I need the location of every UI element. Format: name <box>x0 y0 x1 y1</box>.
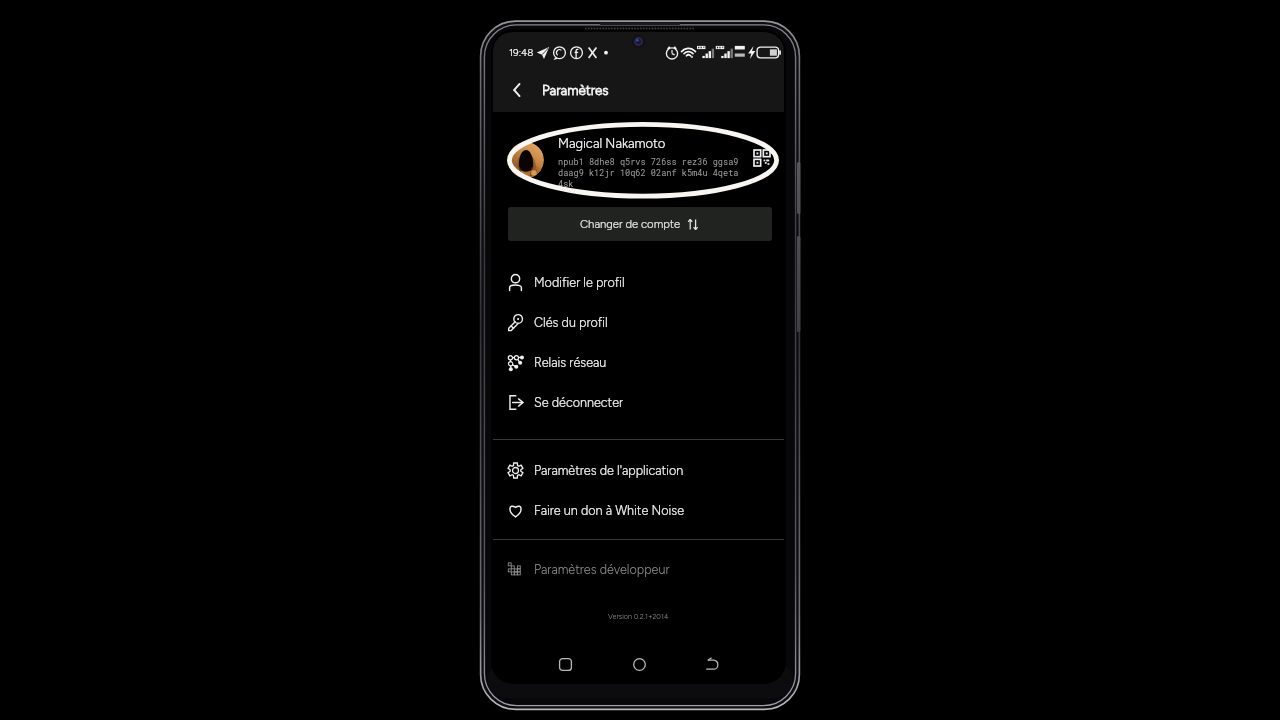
staticText: Faire un don à White Noise <box>534 503 685 518</box>
button[interactable]: Paramètres de l'application <box>493 450 784 490</box>
staticText: Se déconnecter <box>534 395 624 410</box>
staticText: Changer de compte <box>580 217 681 231</box>
button[interactable]: Back <box>696 648 728 680</box>
button[interactable]: Relais réseau <box>493 342 784 382</box>
button[interactable]: Se déconnecter <box>493 382 784 422</box>
staticText: 19:48 <box>509 46 534 58</box>
button[interactable]: Changer de compte <box>508 207 772 241</box>
staticText: Magical Nakamoto <box>558 136 666 152</box>
staticText: Paramètres développeur <box>534 562 670 577</box>
staticText: Relais réseau <box>534 355 607 370</box>
button[interactable]: Back <box>502 75 532 105</box>
button[interactable]: Modifier le profil <box>493 262 784 302</box>
staticText: Paramètres <box>542 82 609 98</box>
staticText: Version 0.2.1+2014 <box>608 612 669 621</box>
button[interactable]: Faire un don à White Noise <box>493 490 784 530</box>
button[interactable]: Home <box>623 648 655 680</box>
staticText: Clés du profil <box>534 315 608 330</box>
staticText: Paramètres de l'application <box>534 463 684 478</box>
button[interactable]: Clés du profil <box>493 302 784 342</box>
staticText: npub1 8dhe8 q5rvs 726ss rez36 ggsa9 daag… <box>558 156 746 189</box>
button[interactable]: Magical Nakamoto <box>493 128 784 194</box>
button[interactable]: Recent apps <box>549 648 581 680</box>
staticText: Modifier le profil <box>534 275 625 290</box>
button[interactable]: Paramètres développeur <box>493 549 784 589</box>
button[interactable]: Show QR code <box>750 146 774 170</box>
